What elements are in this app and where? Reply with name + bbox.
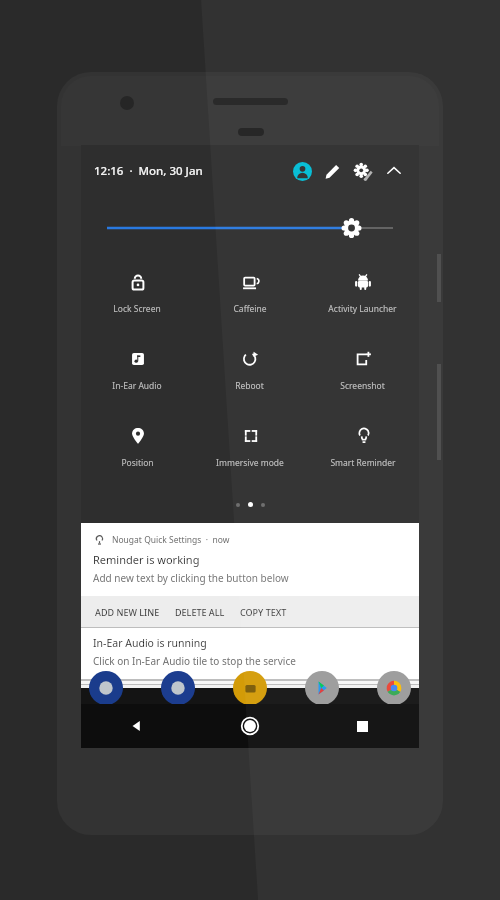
button[interactable]: Immersive mode: [193, 417, 306, 494]
staticText: Click on In-Ear Audio tile to stop the s…: [93, 654, 296, 668]
button[interactable]: Screenshot: [306, 340, 419, 417]
button[interactable]: [233, 671, 267, 705]
button[interactable]: Settings: [347, 155, 379, 187]
button[interactable]: User account: [287, 156, 317, 186]
button[interactable]: In-Ear Audio is running: [81, 628, 419, 679]
button[interactable]: Smart Reminder: [306, 417, 419, 494]
button[interactable]: Back: [81, 704, 193, 748]
staticText: Nougat Quick Settings · now: [112, 534, 230, 546]
button[interactable]: Activity Launcher: [306, 263, 419, 340]
button[interactable]: [377, 671, 411, 705]
staticText: Reminder is working: [93, 552, 200, 567]
button[interactable]: COPY TEXT: [237, 601, 290, 623]
button[interactable]: ADD NEW LINE: [92, 601, 163, 623]
staticText: 12:16 · Mon, 30 Jan: [94, 163, 203, 179]
staticText: Activity Launcher: [328, 303, 397, 315]
button[interactable]: Edit tiles: [317, 156, 347, 186]
button[interactable]: Caffeine: [193, 263, 306, 340]
button[interactable]: Lock Screen: [81, 263, 193, 340]
staticText: Immersive mode: [216, 457, 284, 469]
staticText: Add new text by clicking the button belo…: [93, 571, 289, 585]
staticText: Smart Reminder: [330, 457, 396, 469]
button[interactable]: Collapse: [379, 156, 409, 186]
button[interactable]: Reboot: [193, 340, 306, 417]
staticText: Reboot: [235, 380, 264, 392]
button[interactable]: Home: [193, 704, 306, 748]
staticText: In-Ear Audio is running: [93, 636, 207, 650]
button[interactable]: Position: [81, 417, 193, 494]
staticText: COPY TEXT: [240, 606, 287, 618]
staticText: DELETE ALL: [175, 606, 225, 618]
button[interactable]: Recent apps: [306, 704, 419, 748]
button[interactable]: [305, 671, 339, 705]
button[interactable]: DELETE ALL: [172, 601, 228, 623]
button[interactable]: In-Ear Audio: [81, 340, 193, 417]
staticText: Caffeine: [233, 303, 267, 315]
staticText: ADD NEW LINE: [95, 606, 160, 618]
staticText: Lock Screen: [113, 303, 161, 315]
button[interactable]: [161, 671, 195, 705]
staticText: Position: [121, 457, 154, 469]
staticText: In-Ear Audio: [112, 380, 162, 392]
button[interactable]: [89, 671, 123, 705]
staticText: Screenshot: [340, 380, 385, 392]
